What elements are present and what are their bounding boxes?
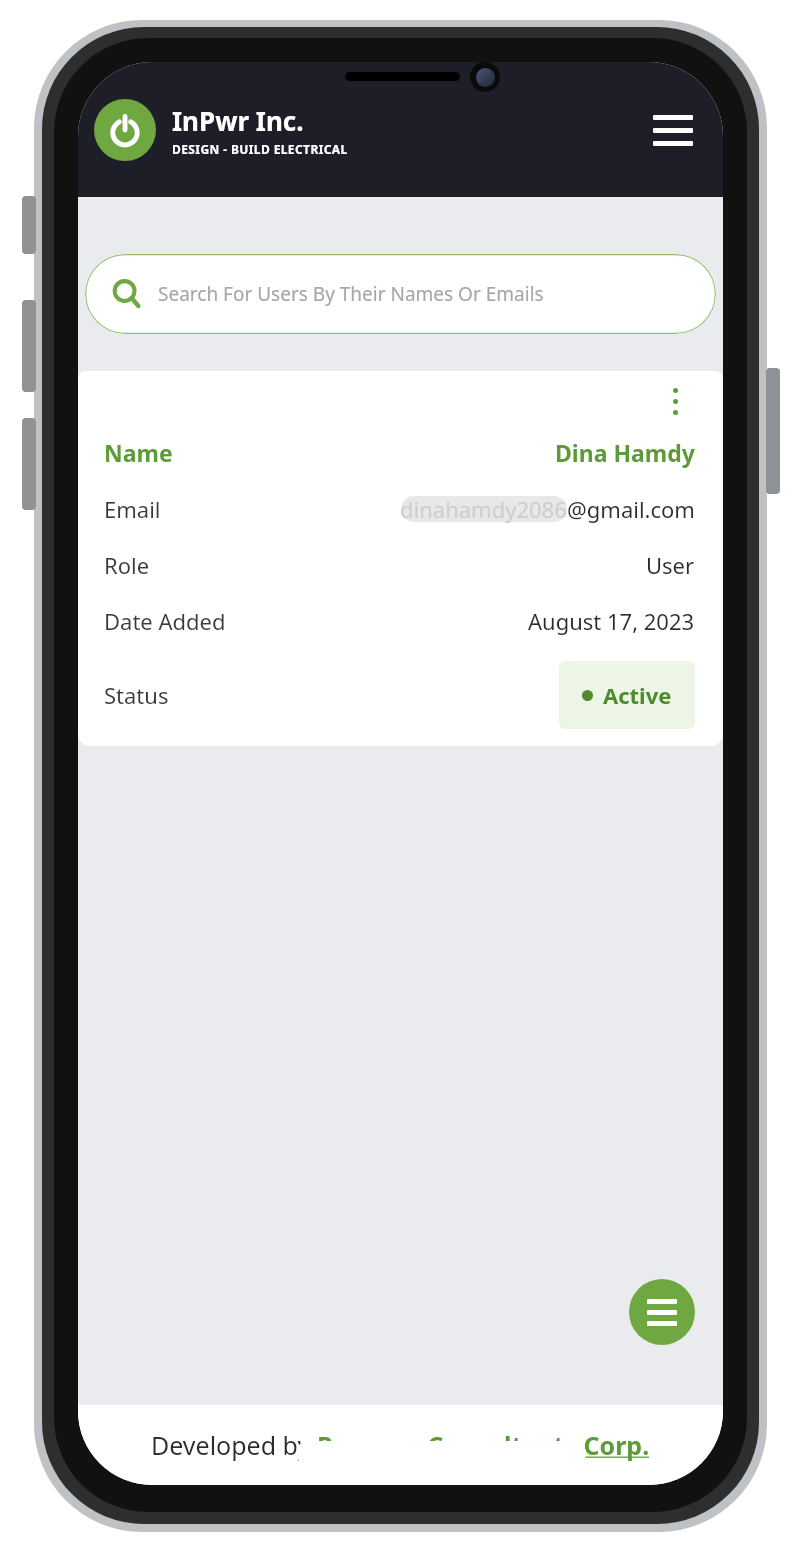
staticText: Search For Users By Their Names Or Email…: [158, 281, 544, 307]
staticText: Active: [603, 680, 672, 710]
button[interactable]: Date Added: [104, 606, 695, 636]
button[interactable]: Role: [104, 550, 695, 580]
staticText: @gmail.com: [567, 494, 695, 524]
button[interactable]: More options: [655, 379, 695, 423]
staticText: Name: [104, 437, 173, 468]
button[interactable]: Name: [104, 437, 695, 468]
button[interactable]: Email: [104, 494, 695, 524]
staticText: Status: [104, 680, 169, 710]
staticText: Role: [104, 550, 150, 580]
button[interactable]: Menu actions: [629, 1279, 695, 1345]
staticText: Date Added: [104, 606, 226, 636]
staticText: Dina Hamdy: [555, 437, 695, 468]
staticText: DESIGN - BUILD ELECTRICAL: [172, 141, 348, 157]
staticText: August 17, 2023: [528, 606, 695, 636]
button[interactable]: [94, 99, 156, 161]
staticText: InPwr Inc.: [172, 103, 304, 138]
button[interactable]: Paragon Consultants Corp.: [317, 1428, 650, 1462]
button[interactable]: Open menu: [649, 106, 697, 154]
button[interactable]: Search For Users By Their Names Or Email…: [85, 254, 716, 334]
staticText: dinahamdy2086: [400, 494, 567, 524]
button[interactable]: Active: [559, 661, 695, 729]
staticText: Developed by: [151, 1428, 317, 1462]
staticText: Email: [104, 494, 161, 524]
staticText: User: [646, 550, 695, 580]
